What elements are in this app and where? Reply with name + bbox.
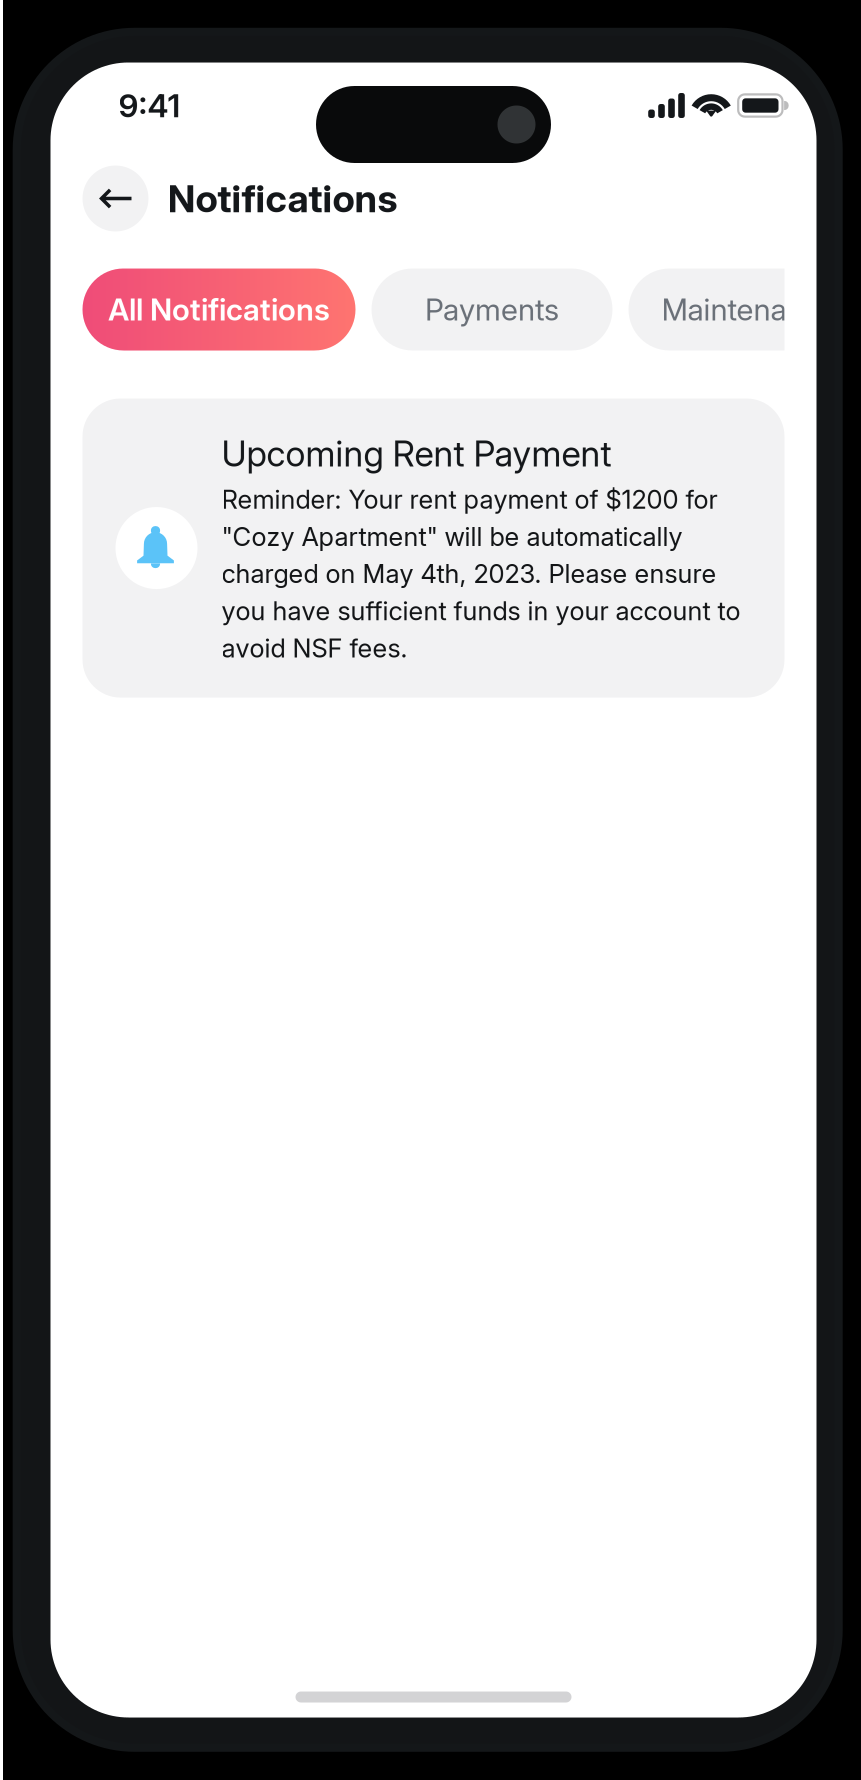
staticText: All Notifications bbox=[108, 291, 330, 328]
button[interactable]: Maintenance bbox=[628, 268, 861, 350]
button[interactable]: Payments bbox=[371, 268, 612, 350]
staticText: Maintenance bbox=[661, 291, 836, 328]
staticText: Upcoming Rent Payment bbox=[221, 432, 611, 475]
staticText: 9:41 bbox=[118, 86, 180, 125]
button[interactable]: Upcoming Rent Payment bbox=[82, 398, 784, 698]
staticText: Reminder: Your rent payment of $1200 for… bbox=[221, 484, 740, 664]
button[interactable]: All Notifications bbox=[82, 268, 355, 350]
staticText: Notifications bbox=[167, 175, 397, 221]
button[interactable]: Back bbox=[82, 165, 148, 231]
staticText: Payments bbox=[425, 291, 559, 328]
